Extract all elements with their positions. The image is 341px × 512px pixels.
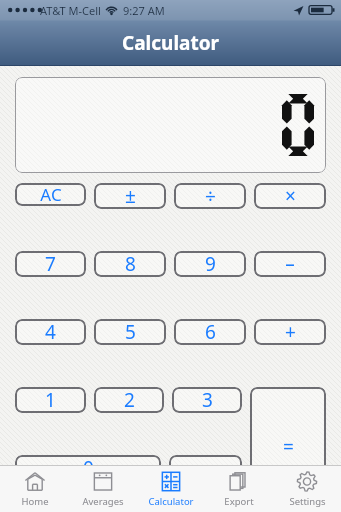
staticText: 1 bbox=[45, 387, 56, 413]
staticText: 0 bbox=[83, 455, 94, 481]
button[interactable]: 0 bbox=[15, 455, 161, 481]
staticText: = bbox=[283, 434, 294, 460]
button[interactable]: 5 bbox=[94, 319, 166, 345]
button[interactable]: × bbox=[254, 183, 326, 209]
staticText: 9:27 AM bbox=[123, 3, 165, 18]
staticText: AC bbox=[40, 183, 62, 206]
staticText: – bbox=[285, 251, 295, 277]
button[interactable]: – bbox=[254, 251, 326, 277]
button[interactable]: Export bbox=[205, 466, 273, 512]
button[interactable]: Calculator bbox=[137, 466, 205, 512]
staticText: 9 bbox=[205, 251, 216, 277]
staticText: . bbox=[203, 455, 209, 481]
staticText: Home bbox=[21, 495, 49, 508]
staticText: 4 bbox=[45, 319, 56, 345]
button[interactable]: 2 bbox=[94, 387, 164, 413]
button[interactable]: 4 bbox=[15, 319, 86, 345]
staticText: Calculator bbox=[122, 30, 220, 56]
staticText: × bbox=[285, 183, 296, 209]
button[interactable]: 7 bbox=[15, 251, 86, 277]
staticText: 7 bbox=[45, 251, 56, 277]
button[interactable]: 3 bbox=[172, 387, 242, 413]
button[interactable]: 9 bbox=[174, 251, 246, 277]
staticText: Averages bbox=[82, 495, 124, 508]
button[interactable]: ± bbox=[94, 183, 166, 209]
staticText: ÷ bbox=[205, 183, 216, 209]
button[interactable]: 1 bbox=[15, 387, 86, 413]
button[interactable]: AC bbox=[15, 183, 86, 206]
button[interactable]: Home bbox=[0, 466, 69, 512]
button[interactable]: Averages bbox=[69, 466, 137, 512]
button[interactable]: 6 bbox=[174, 319, 246, 345]
staticText: 6 bbox=[205, 319, 216, 345]
staticText: Settings bbox=[289, 495, 326, 508]
staticText: 8 bbox=[125, 251, 136, 277]
staticText: 2 bbox=[124, 387, 135, 413]
button[interactable]: Settings bbox=[273, 466, 341, 512]
button[interactable]: 8 bbox=[94, 251, 166, 277]
button[interactable]: . bbox=[169, 455, 242, 481]
staticText: 3 bbox=[202, 387, 213, 413]
staticText: + bbox=[285, 319, 296, 345]
staticText: AT&T M-Cell bbox=[40, 3, 101, 18]
staticText: Calculator bbox=[148, 495, 194, 508]
staticText: 5 bbox=[125, 319, 136, 345]
staticText: ± bbox=[125, 183, 136, 209]
button[interactable]: + bbox=[254, 319, 326, 345]
button[interactable]: ÷ bbox=[174, 183, 246, 209]
staticText: Export bbox=[224, 495, 254, 508]
button[interactable]: = bbox=[250, 387, 326, 507]
